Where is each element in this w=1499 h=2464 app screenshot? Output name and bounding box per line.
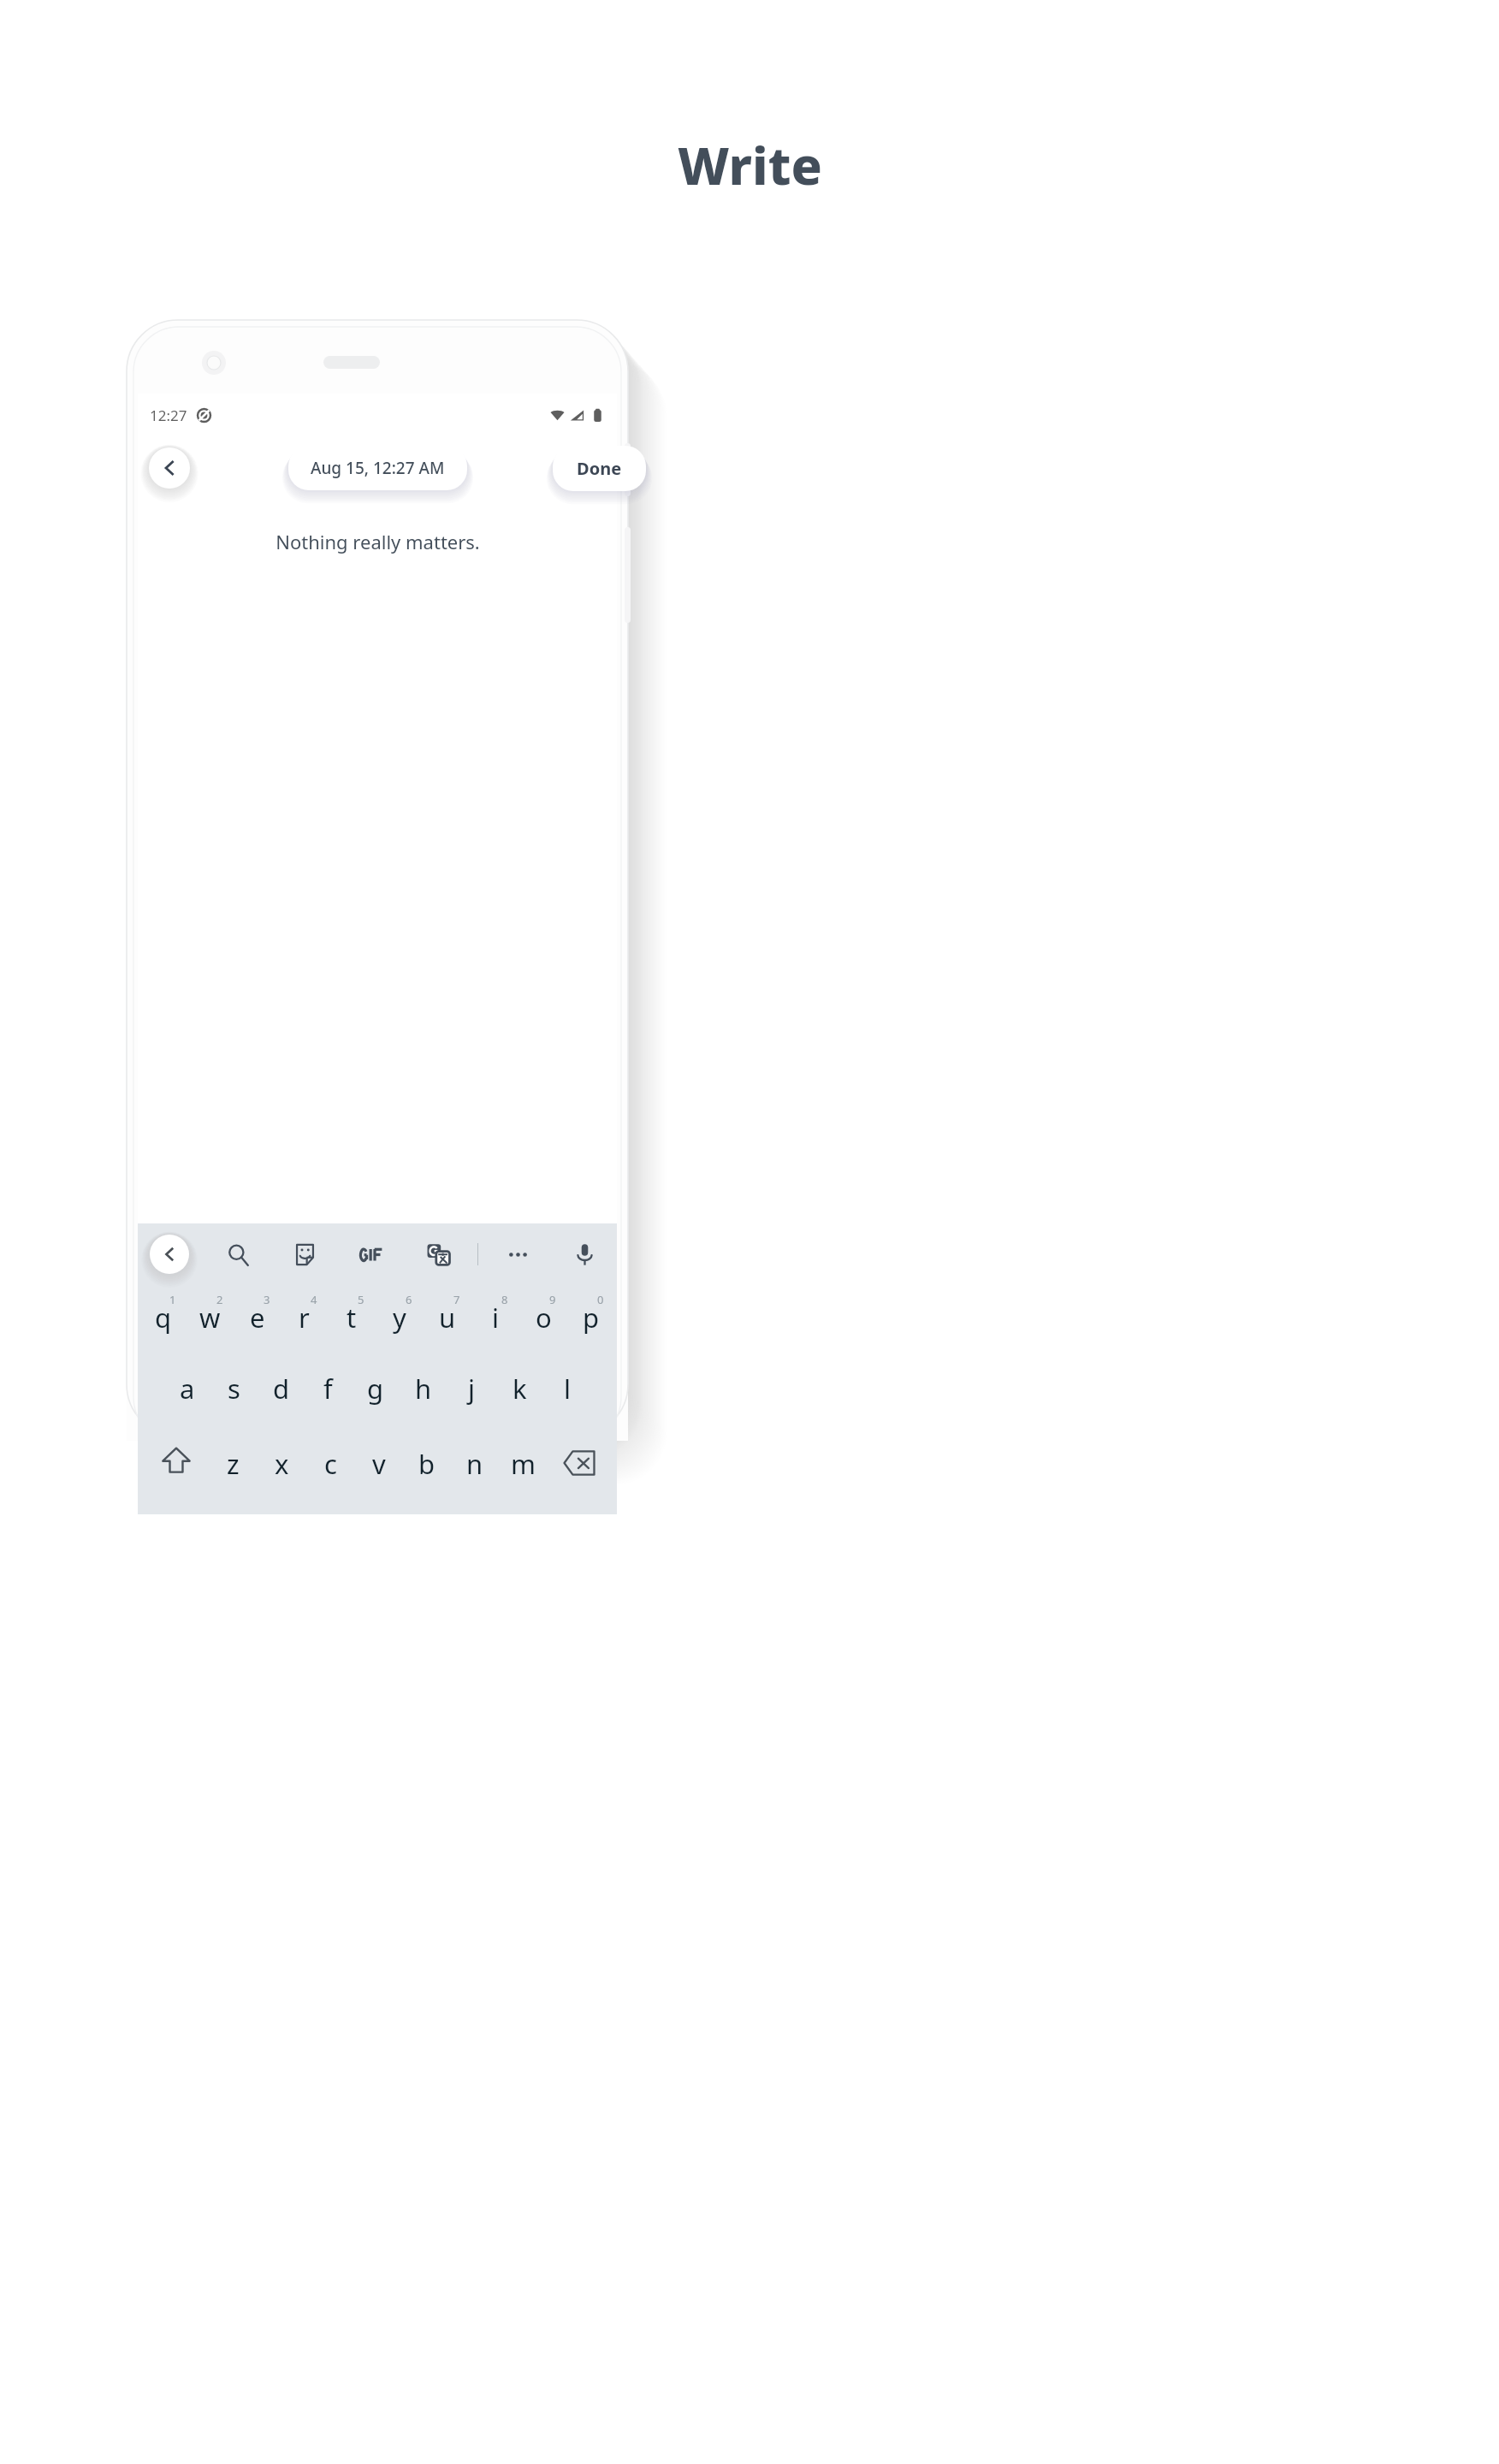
button[interactable]: 0 xyxy=(567,1285,615,1364)
button[interactable]: Back xyxy=(149,447,190,489)
staticText: Nothing really matters. xyxy=(276,529,480,554)
button[interactable]: z xyxy=(209,1439,258,1514)
staticText: v xyxy=(372,1446,386,1482)
staticText: n xyxy=(466,1446,483,1482)
staticText: 6 xyxy=(406,1292,412,1307)
staticText: 12:27 xyxy=(150,406,187,425)
button[interactable]: More options xyxy=(499,1235,536,1273)
staticText: h xyxy=(415,1371,432,1407)
staticText: 9 xyxy=(549,1292,556,1307)
staticText: o xyxy=(536,1300,552,1336)
staticText: c xyxy=(324,1446,337,1482)
staticText: u xyxy=(439,1300,456,1336)
button[interactable]: d xyxy=(258,1364,305,1439)
button[interactable]: Done xyxy=(553,446,646,491)
staticText: e xyxy=(250,1300,265,1336)
button[interactable]: 7 xyxy=(424,1285,471,1364)
button[interactable]: x xyxy=(258,1439,306,1514)
staticText: 5 xyxy=(358,1292,364,1307)
staticText: d xyxy=(273,1371,290,1407)
staticText: p xyxy=(583,1300,600,1336)
button[interactable]: Nothing really matters. xyxy=(138,500,617,1223)
button[interactable]: GIF xyxy=(353,1235,390,1273)
button[interactable]: 9 xyxy=(519,1285,567,1364)
staticText: 2 xyxy=(216,1292,223,1307)
staticText: t xyxy=(347,1300,357,1336)
staticText: g xyxy=(367,1371,384,1407)
staticText: k xyxy=(513,1371,527,1407)
staticText: y xyxy=(393,1300,406,1336)
staticText: z xyxy=(227,1446,240,1482)
staticText: f xyxy=(323,1371,333,1407)
button[interactable]: f xyxy=(305,1364,352,1439)
button[interactable]: a xyxy=(163,1364,210,1439)
button[interactable]: 3 xyxy=(234,1285,281,1364)
staticText: s xyxy=(228,1371,240,1407)
staticText: 3 xyxy=(264,1292,270,1307)
staticText: q xyxy=(155,1300,172,1336)
staticText: 0 xyxy=(597,1292,604,1307)
button[interactable]: 6 xyxy=(376,1285,424,1364)
button[interactable]: v xyxy=(355,1439,403,1514)
button[interactable]: 8 xyxy=(471,1285,519,1364)
button[interactable]: s xyxy=(210,1364,258,1439)
staticText: l xyxy=(564,1371,571,1407)
button[interactable]: Shift xyxy=(143,1439,209,1514)
button[interactable]: Translate xyxy=(419,1235,457,1273)
button[interactable]: Aug 15, 12:27 AM xyxy=(288,446,467,490)
staticText: 1 xyxy=(169,1292,176,1307)
button[interactable]: h xyxy=(400,1364,447,1439)
staticText: j xyxy=(468,1371,475,1407)
button[interactable]: k xyxy=(495,1364,543,1439)
button[interactable]: m xyxy=(499,1439,547,1514)
staticText: Done xyxy=(577,457,622,480)
button[interactable]: 4 xyxy=(281,1285,328,1364)
button[interactable]: Collapse toolbar xyxy=(150,1235,189,1274)
button[interactable]: g xyxy=(352,1364,400,1439)
button[interactable]: Stickers xyxy=(286,1235,323,1273)
button[interactable]: j xyxy=(447,1364,495,1439)
staticText: Write xyxy=(678,130,822,200)
button[interactable]: 2 xyxy=(187,1285,234,1364)
staticText: 4 xyxy=(311,1292,317,1307)
button[interactable]: Voice input xyxy=(566,1235,603,1273)
staticText: r xyxy=(299,1300,310,1336)
button[interactable]: l xyxy=(543,1364,591,1439)
staticText: b xyxy=(418,1446,435,1482)
button[interactable]: Backspace xyxy=(547,1439,612,1514)
button[interactable]: c xyxy=(306,1439,355,1514)
button[interactable]: b xyxy=(403,1439,451,1514)
staticText: 8 xyxy=(501,1292,508,1307)
staticText: a xyxy=(180,1371,195,1407)
staticText: i xyxy=(492,1300,499,1336)
staticText: 7 xyxy=(453,1292,460,1307)
staticText: w xyxy=(199,1300,221,1336)
button[interactable]: Search xyxy=(219,1235,257,1273)
staticText: x xyxy=(275,1446,289,1482)
button[interactable]: 5 xyxy=(328,1285,376,1364)
staticText: m xyxy=(511,1446,536,1482)
staticText: Aug 15, 12:27 AM xyxy=(311,457,445,479)
button[interactable]: 1 xyxy=(139,1285,187,1364)
button[interactable]: n xyxy=(451,1439,499,1514)
